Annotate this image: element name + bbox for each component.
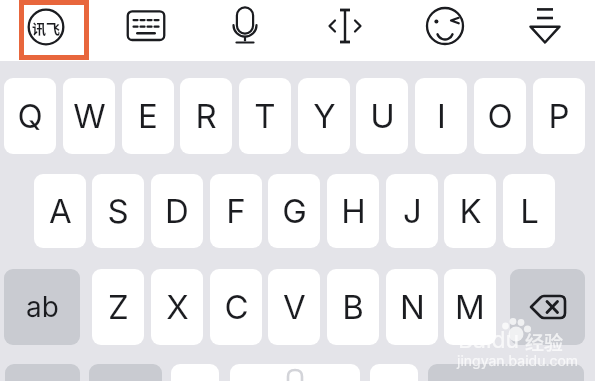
- button[interactable]: [428, 364, 584, 381]
- staticText: E: [138, 96, 158, 136]
- staticText: W: [73, 96, 106, 136]
- staticText: M: [455, 287, 485, 327]
- staticText: D: [165, 191, 189, 231]
- button[interactable]: P: [533, 78, 585, 154]
- button[interactable]: S: [92, 174, 144, 248]
- staticText: K: [459, 191, 482, 231]
- button[interactable]: Emoji: [414, 0, 476, 52]
- staticText: B: [342, 287, 364, 327]
- button[interactable]: V: [268, 269, 320, 345]
- staticText: I: [437, 96, 446, 136]
- button[interactable]: M: [444, 269, 496, 345]
- button[interactable]: Hide keyboard: [514, 0, 576, 52]
- staticText: Baidu: [458, 326, 520, 354]
- staticText: S: [107, 191, 129, 231]
- staticText: A: [49, 191, 72, 231]
- staticText: N: [400, 287, 425, 327]
- button[interactable]: Space: [230, 364, 360, 381]
- button[interactable]: Q: [4, 78, 56, 154]
- button[interactable]: Voice input: [214, 0, 276, 52]
- staticText: Y: [313, 96, 336, 136]
- button[interactable]: H: [327, 174, 379, 248]
- staticText: Q: [17, 96, 43, 136]
- staticText: U: [370, 96, 395, 136]
- button[interactable]: E: [122, 78, 174, 154]
- staticText: R: [195, 96, 217, 136]
- button[interactable]: F: [210, 174, 262, 248]
- staticText: H: [341, 191, 366, 231]
- button[interactable]: [89, 364, 162, 381]
- staticText: 讯飞: [32, 18, 60, 38]
- button[interactable]: Keyboard layout: [115, 0, 177, 52]
- staticText: L: [520, 191, 539, 231]
- staticText: J: [403, 191, 422, 231]
- staticText: V: [283, 287, 306, 327]
- button[interactable]: [370, 364, 418, 381]
- button[interactable]: J: [386, 174, 438, 248]
- button[interactable]: ab: [4, 269, 80, 345]
- button[interactable]: Move cursor: [314, 0, 376, 52]
- button[interactable]: I: [415, 78, 467, 154]
- button[interactable]: Switch input method: [15, 1, 77, 53]
- button[interactable]: [510, 269, 585, 345]
- staticText: C: [224, 287, 249, 327]
- staticText: F: [226, 191, 246, 231]
- staticText: 经验: [525, 328, 564, 356]
- button[interactable]: L: [503, 174, 555, 248]
- button[interactable]: B: [327, 269, 379, 345]
- staticText: Z: [108, 287, 129, 327]
- button[interactable]: [171, 364, 219, 381]
- staticText: G: [282, 191, 307, 231]
- button[interactable]: O: [474, 78, 526, 154]
- button[interactable]: K: [444, 174, 496, 248]
- staticText: ab: [26, 290, 59, 324]
- button[interactable]: A: [34, 174, 86, 248]
- button[interactable]: N: [386, 269, 438, 345]
- button[interactable]: R: [180, 78, 232, 154]
- button[interactable]: G: [268, 174, 320, 248]
- staticText: jingyan.baidu.com: [457, 352, 579, 369]
- staticText: P: [548, 96, 570, 136]
- button[interactable]: [5, 364, 80, 381]
- button[interactable]: C: [210, 269, 262, 345]
- button[interactable]: Y: [298, 78, 350, 154]
- button[interactable]: Z: [92, 269, 144, 345]
- button[interactable]: D: [151, 174, 203, 248]
- staticText: T: [254, 96, 276, 136]
- staticText: O: [487, 96, 513, 136]
- staticText: X: [166, 287, 189, 327]
- button[interactable]: X: [151, 269, 203, 345]
- button[interactable]: T: [239, 78, 291, 154]
- button[interactable]: W: [63, 78, 115, 154]
- button[interactable]: U: [356, 78, 408, 154]
